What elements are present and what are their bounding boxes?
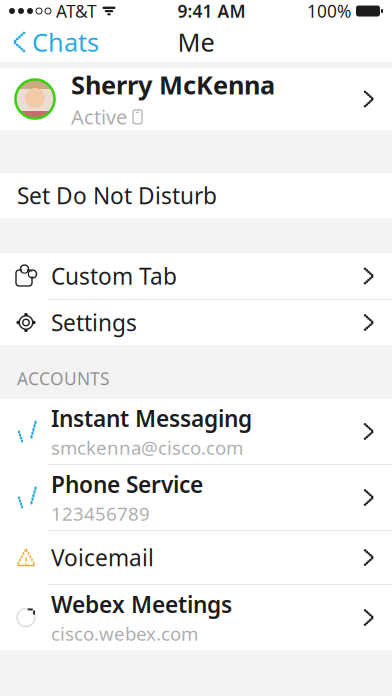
button[interactable]: Settings xyxy=(0,300,392,345)
staticText: AT&T xyxy=(56,0,97,22)
staticText: 9:41 AM xyxy=(177,0,245,22)
button[interactable]: Voicemail xyxy=(0,531,392,585)
staticText: ACCOUNTS xyxy=(17,367,110,390)
button[interactable]: Set Do Not Disturb xyxy=(0,173,392,218)
button[interactable]: Chats xyxy=(0,22,113,62)
staticText: Phone Service xyxy=(51,469,203,499)
staticText: smckenna@cisco.com xyxy=(51,435,243,460)
staticText: Webex Meetings xyxy=(51,589,232,619)
button[interactable]: Sherry McKenna xyxy=(0,68,392,130)
staticText: Voicemail xyxy=(51,542,154,572)
button[interactable]: Custom Tab xyxy=(0,253,392,300)
staticText: Settings xyxy=(51,307,137,337)
staticText: Custom Tab xyxy=(51,261,177,291)
staticText: Active xyxy=(71,103,127,130)
staticText: Set Do Not Disturb xyxy=(17,180,217,210)
button[interactable]: Webex Meetings xyxy=(0,585,392,650)
staticText: Sherry McKenna xyxy=(71,68,275,101)
staticText: Chats xyxy=(32,25,99,59)
staticText: 123456789 xyxy=(51,501,150,526)
button[interactable]: Phone Service xyxy=(0,465,392,531)
staticText: Instant Messaging xyxy=(51,403,252,433)
staticText: Me xyxy=(177,25,214,59)
staticText: 100% xyxy=(307,0,351,22)
staticText: cisco.webex.com xyxy=(51,621,198,646)
button[interactable]: Instant Messaging xyxy=(0,399,392,465)
